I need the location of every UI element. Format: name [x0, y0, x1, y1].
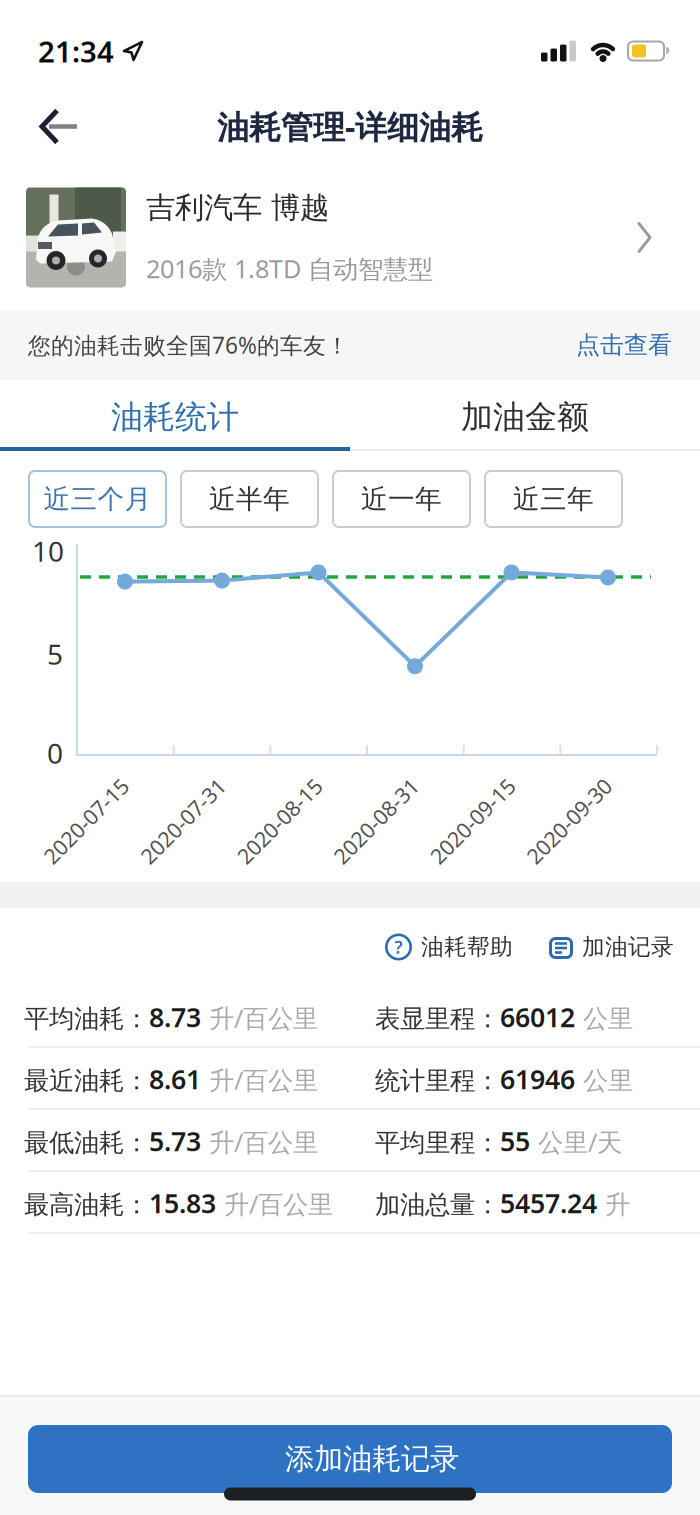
staticText: ? [394, 935, 402, 958]
staticText: 2020-09-30 [514, 807, 624, 835]
staticText: 添加油耗记录 [285, 1441, 459, 1477]
button[interactable]: 添加油耗记录 [28, 1425, 672, 1493]
staticText: 公里 [575, 1003, 633, 1034]
staticText: 点击查看 [576, 330, 672, 360]
staticText: 2016款 1.8TD 自动智慧型 [146, 252, 433, 285]
staticText: 加油记录 [582, 933, 674, 961]
staticText: 加油金额 [461, 397, 589, 437]
staticText: 55 [500, 1123, 530, 1159]
staticText: 平均油耗： [24, 1003, 149, 1034]
staticText: 油耗帮助 [421, 933, 513, 961]
staticText: 2020-09-15 [417, 807, 527, 835]
staticText: 近三个月 [43, 483, 151, 515]
staticText: 21:34 [38, 31, 114, 70]
staticText: 升/百公里 [216, 1187, 333, 1221]
staticText: 8.73 [149, 999, 201, 1035]
staticText: 升 [597, 1189, 630, 1220]
staticText: 66012 [500, 999, 575, 1035]
staticText: 近半年 [209, 483, 290, 515]
staticText: 升/百公里 [201, 1063, 318, 1097]
staticText: 统计里程： [375, 1065, 500, 1096]
staticText: 表显里程： [375, 1003, 500, 1034]
staticText: 2020-08-15 [224, 807, 334, 835]
staticText: 5457.24 [500, 1185, 597, 1221]
staticText: 2020-07-15 [31, 807, 141, 835]
button[interactable]: ? [385, 933, 513, 961]
button[interactable]: 吉利汽车 博越 [0, 165, 700, 310]
staticText: 您的油耗击败全国76%的车友！ [28, 330, 349, 360]
staticText: 平均里程： [375, 1127, 500, 1158]
button[interactable]: 点击查看 [576, 330, 672, 360]
staticText: 公里 [575, 1065, 633, 1096]
button[interactable]: 近三年 [484, 470, 623, 528]
button[interactable]: Back [0, 89, 78, 163]
staticText: 最高油耗： [24, 1189, 149, 1220]
staticText: 最近油耗： [24, 1065, 149, 1096]
staticText: 近三年 [513, 483, 594, 515]
button[interactable]: 近半年 [180, 470, 319, 528]
staticText: 升/百公里 [201, 1125, 318, 1159]
staticText: 15.83 [149, 1185, 216, 1221]
staticText: 61946 [500, 1061, 575, 1097]
staticText: 2020-07-31 [128, 807, 238, 835]
staticText: 加油总量： [375, 1189, 500, 1220]
button[interactable]: 加油金额 [350, 383, 700, 451]
staticText: 2020-08-31 [321, 807, 431, 835]
staticText: 公里/天 [530, 1125, 622, 1159]
staticText: 8.61 [149, 1061, 201, 1097]
button[interactable]: 近三个月 [28, 470, 167, 528]
button[interactable]: 加油记录 [513, 933, 674, 961]
staticText: 油耗管理-详细油耗 [217, 105, 483, 148]
staticText: 5.73 [149, 1123, 201, 1159]
staticText: 近一年 [361, 483, 442, 515]
staticText: 油耗统计 [111, 397, 239, 437]
staticText: 10 [32, 532, 64, 570]
staticText: 最低油耗： [24, 1127, 149, 1158]
staticText: 0 [47, 734, 63, 772]
staticText: 升/百公里 [201, 1001, 318, 1035]
button[interactable]: 油耗统计 [0, 383, 350, 451]
staticText: 5 [47, 635, 63, 673]
staticText: 吉利汽车 博越 [146, 190, 329, 226]
button[interactable]: 近一年 [332, 470, 471, 528]
